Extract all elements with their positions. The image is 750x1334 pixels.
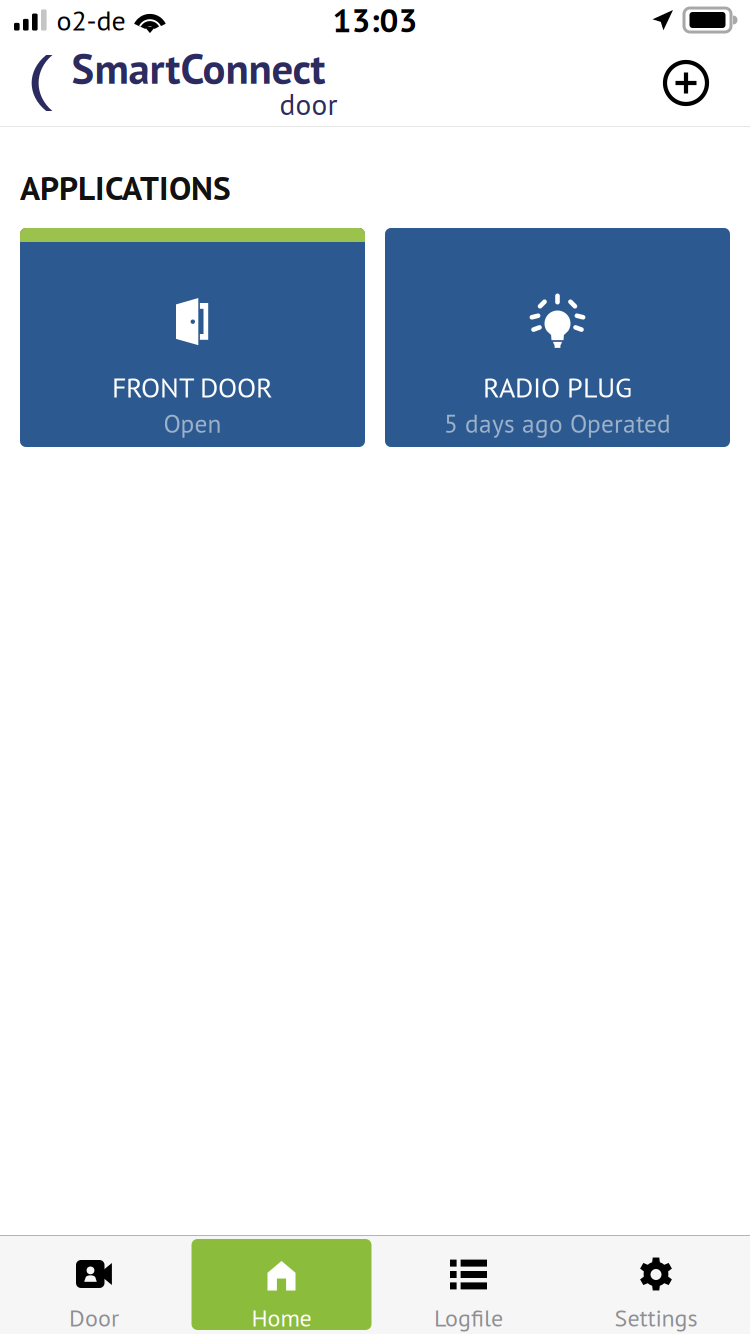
staticText: 5 days ago Operated (444, 407, 671, 440)
button[interactable]: FRONT DOOR (20, 228, 365, 447)
staticText: 13:03 (332, 0, 417, 41)
staticText: SmartConnect (71, 40, 325, 96)
button[interactable]: RADIO PLUG (385, 228, 730, 447)
staticText: Door (69, 1302, 119, 1333)
button[interactable]: Logfile (375, 1236, 562, 1334)
staticText: APPLICATIONS (20, 166, 231, 209)
staticText: Home (251, 1302, 311, 1333)
staticText: FRONT DOOR (112, 369, 273, 405)
staticText: Open (163, 407, 221, 440)
button[interactable]: Add (650, 47, 722, 119)
staticText: o2-de (57, 2, 126, 38)
staticText: door (279, 85, 337, 123)
button[interactable]: Home (188, 1236, 375, 1334)
staticText: Logfile (434, 1302, 503, 1333)
staticText: Settings (614, 1302, 697, 1333)
button[interactable]: Settings (562, 1236, 750, 1334)
staticText: RADIO PLUG (483, 369, 632, 405)
button[interactable]: Door (0, 1236, 188, 1334)
